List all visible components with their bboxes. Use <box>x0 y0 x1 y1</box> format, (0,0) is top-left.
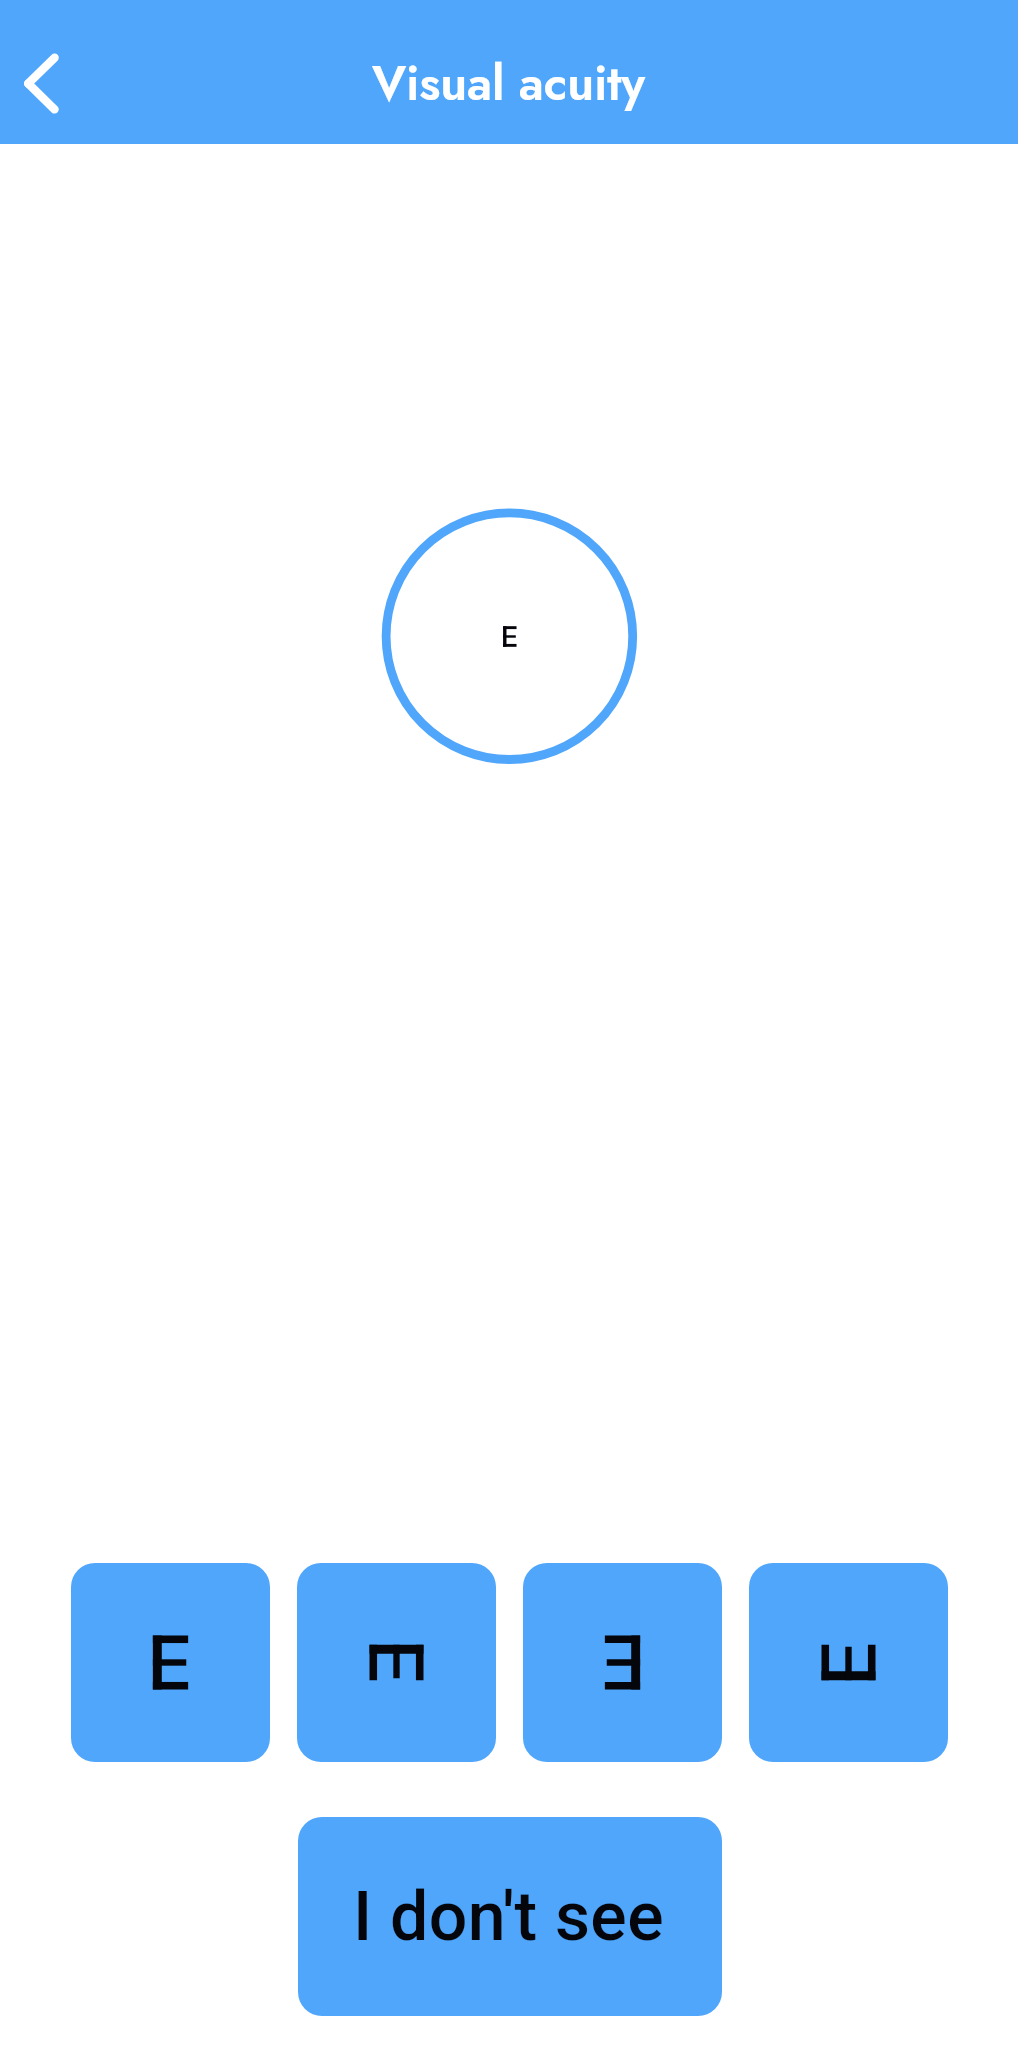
staticText: I don't see <box>353 1877 664 1957</box>
button[interactable]: Answer E <box>71 1563 270 1762</box>
button[interactable]: I don't see <box>298 1817 722 2016</box>
button[interactable]: Answer E <box>749 1563 948 1762</box>
staticText: Visual acuity <box>372 49 646 118</box>
button[interactable]: Back <box>0 0 92 144</box>
button[interactable]: Answer E <box>523 1563 722 1762</box>
button[interactable]: Answer E <box>297 1563 496 1762</box>
